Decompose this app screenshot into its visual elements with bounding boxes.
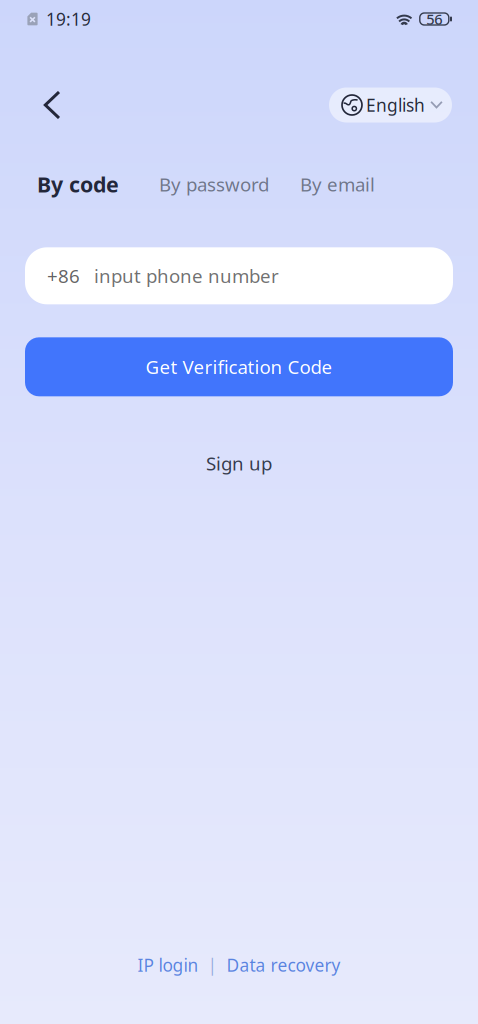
button[interactable]: By email	[300, 172, 375, 197]
staticText: Data recovery	[226, 953, 340, 976]
staticText: Get Verification Code	[145, 354, 332, 379]
staticText: input phone number	[94, 263, 279, 288]
staticText: By email	[300, 172, 375, 197]
staticText: |	[207, 953, 217, 976]
staticText: By code	[37, 170, 119, 198]
staticText: 56	[426, 9, 442, 29]
staticText: +86	[47, 263, 80, 288]
button[interactable]: Get Verification Code	[25, 337, 453, 396]
button[interactable]: Back	[32, 85, 72, 125]
staticText: By password	[159, 172, 269, 197]
button[interactable]: Sign up	[206, 446, 272, 480]
button[interactable]: By password	[159, 172, 269, 197]
button[interactable]: English	[329, 87, 452, 122]
button[interactable]: By code	[37, 170, 119, 198]
button[interactable]: IP login	[137, 953, 198, 976]
staticText: IP login	[137, 953, 198, 976]
staticText: Sign up	[206, 451, 272, 476]
staticText: English	[366, 93, 425, 116]
staticText: 19:19	[46, 7, 91, 30]
button[interactable]: Data recovery	[226, 953, 340, 976]
